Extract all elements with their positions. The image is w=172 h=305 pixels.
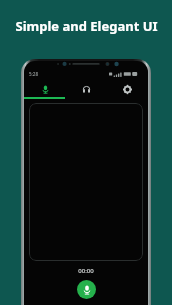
button[interactable]: Record xyxy=(24,81,66,97)
staticText: Simple and Elegant UI xyxy=(15,17,158,35)
staticText: 00:00 xyxy=(78,267,94,275)
button[interactable]: Listen xyxy=(66,81,107,97)
button[interactable]: Settings xyxy=(107,81,148,97)
staticText: 5:28 xyxy=(29,71,38,77)
button[interactable]: Record xyxy=(77,280,96,299)
